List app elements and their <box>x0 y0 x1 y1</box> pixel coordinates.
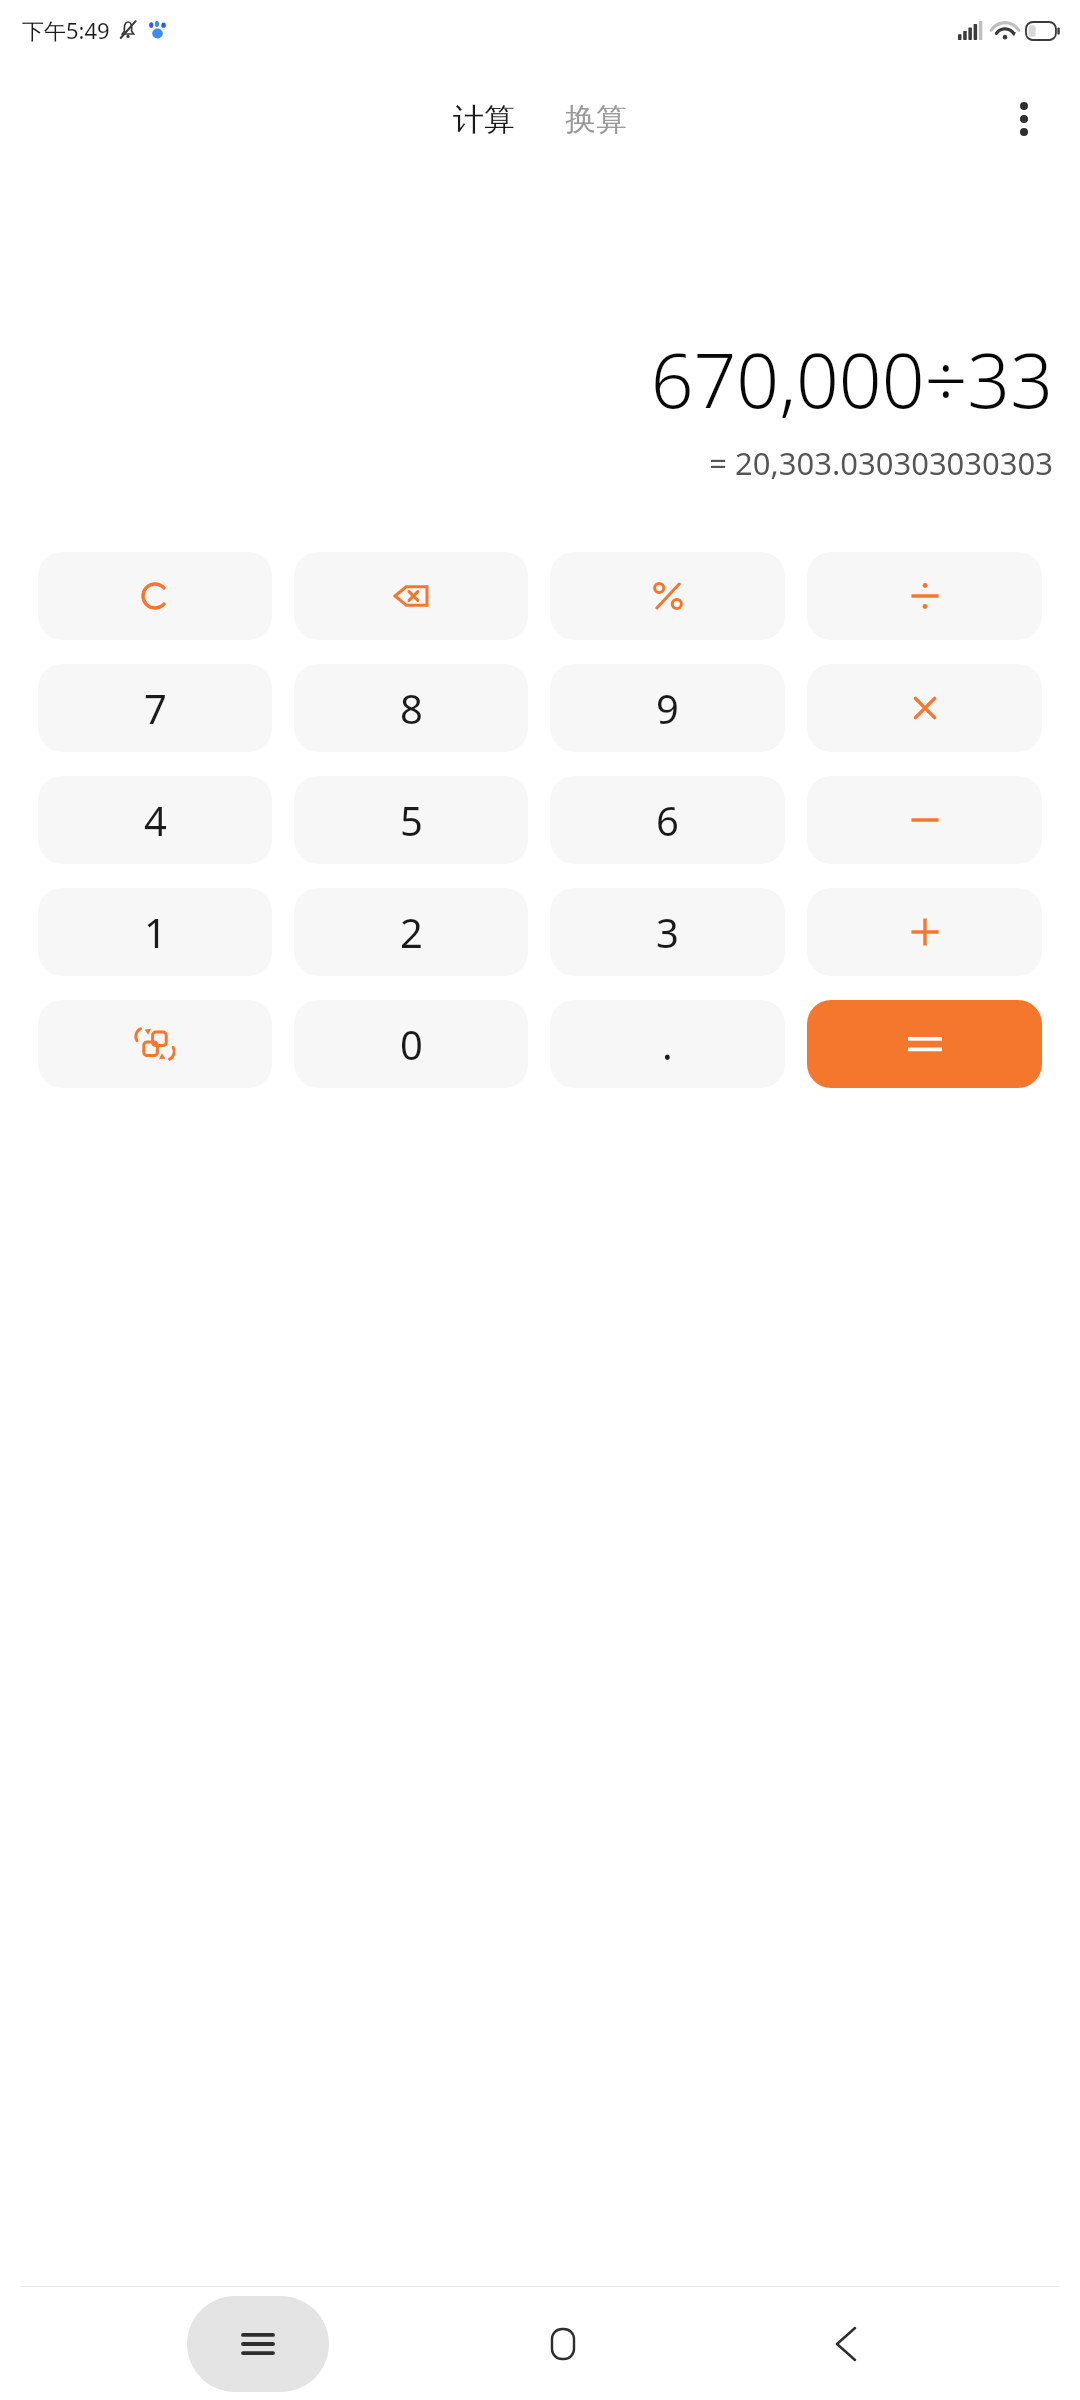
staticText: = 20,303.030303030303 <box>27 442 1053 484</box>
staticText: 9 <box>656 681 679 735</box>
button[interactable]: 换算 <box>555 94 637 145</box>
button[interactable]: Minus <box>807 776 1042 864</box>
staticText: 3 <box>656 905 679 959</box>
button[interactable]: 2 <box>294 888 528 976</box>
staticText: . <box>662 1017 673 1071</box>
button[interactable]: Divide <box>807 552 1042 640</box>
button[interactable]: 5 <box>294 776 528 864</box>
button[interactable]: 7 <box>38 664 272 752</box>
staticText: 计算 <box>453 100 515 139</box>
button[interactable]: Multiply <box>807 664 1042 752</box>
staticText: 8 <box>400 681 423 735</box>
button[interactable]: Recents <box>187 2296 329 2392</box>
button[interactable]: 8 <box>294 664 528 752</box>
button[interactable]: More options <box>992 87 1056 151</box>
staticText: 1 <box>144 905 167 959</box>
staticText: 7 <box>144 681 167 735</box>
button[interactable]: Convert units <box>38 1000 272 1088</box>
button[interactable]: 3 <box>550 888 785 976</box>
button[interactable]: Plus <box>807 888 1042 976</box>
staticText: 6 <box>656 793 679 847</box>
staticText: 5 <box>400 793 423 847</box>
button[interactable]: 9 <box>550 664 785 752</box>
button[interactable]: 6 <box>550 776 785 864</box>
button[interactable]: 1 <box>38 888 272 976</box>
button[interactable]: Percent <box>550 552 785 640</box>
button[interactable]: . <box>550 1000 785 1088</box>
button[interactable]: Back <box>798 2296 894 2392</box>
staticText: 换算 <box>565 100 627 139</box>
staticText: 下午5:49 <box>22 15 110 45</box>
button[interactable]: 计算 <box>443 94 525 145</box>
button[interactable]: Home <box>515 2296 611 2392</box>
staticText: 0 <box>400 1017 423 1071</box>
button[interactable]: 4 <box>38 776 272 864</box>
button[interactable]: 0 <box>294 1000 528 1088</box>
button[interactable]: Equals <box>807 1000 1042 1088</box>
button[interactable]: Backspace <box>294 552 528 640</box>
staticText: 670,000÷33 <box>27 328 1053 430</box>
button[interactable]: Clear <box>38 552 272 640</box>
staticText: 4 <box>144 793 167 847</box>
staticText: 2 <box>400 905 423 959</box>
